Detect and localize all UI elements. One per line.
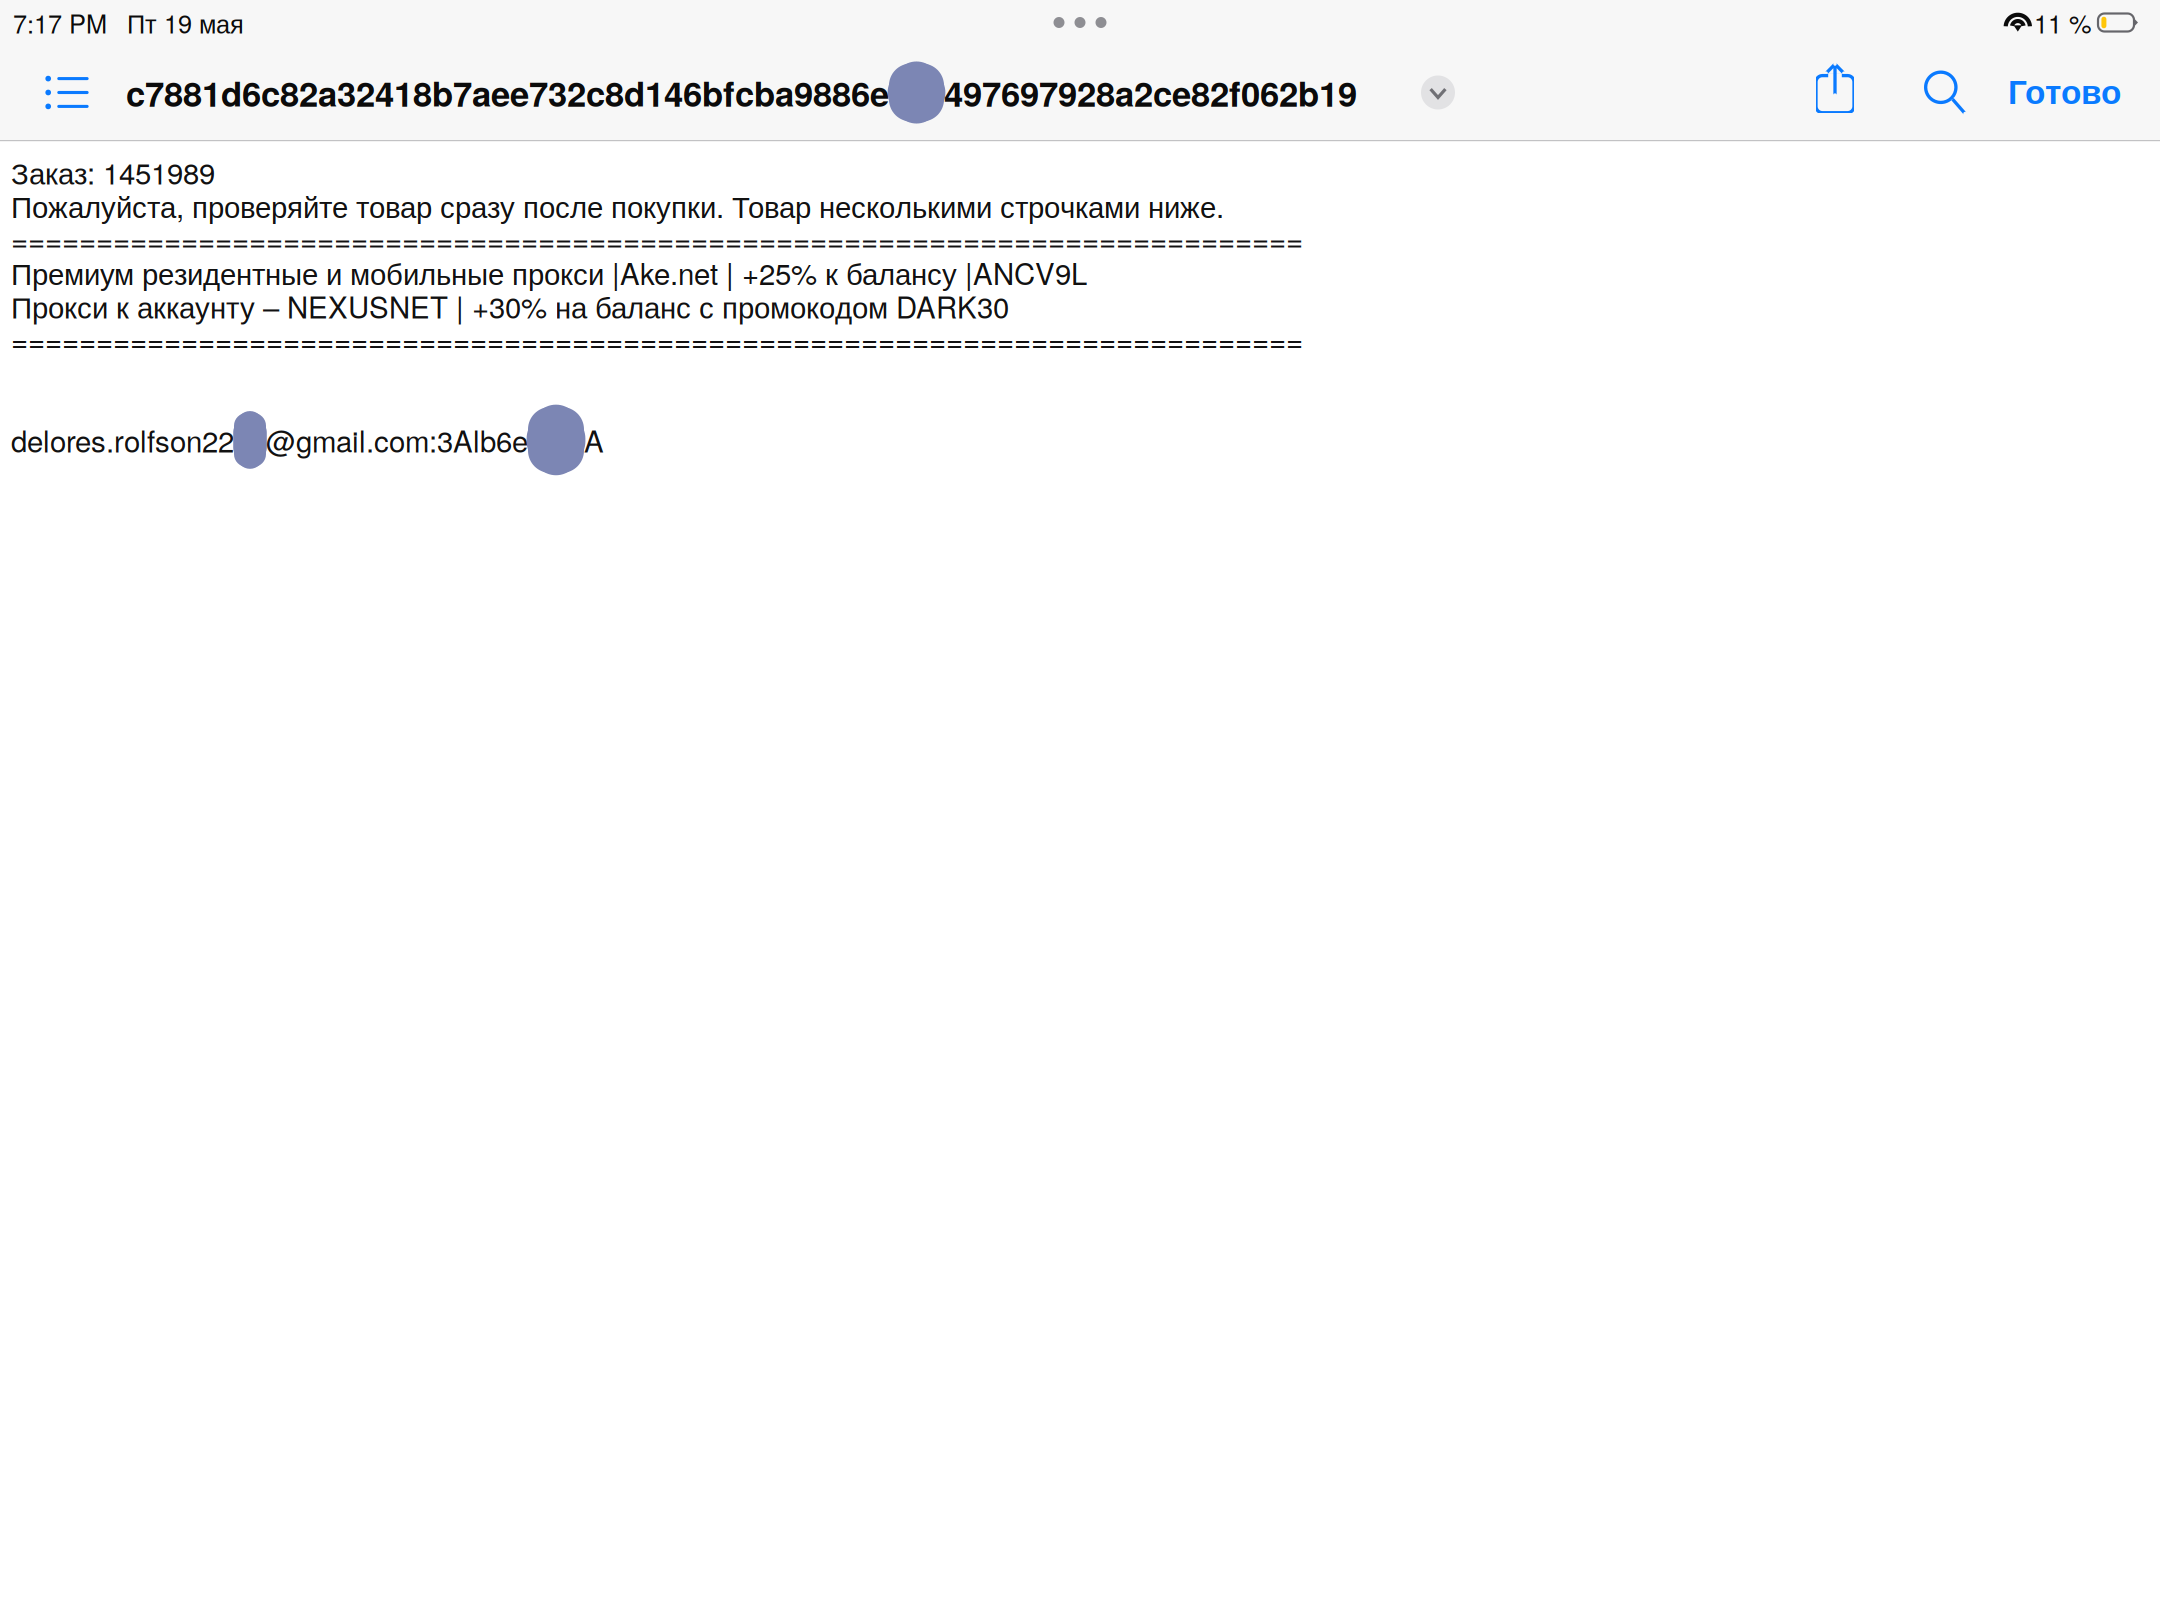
staticText: Пт 19 мая	[127, 4, 244, 41]
staticText: A	[584, 419, 604, 461]
staticText: delores.rolfson22	[11, 419, 234, 461]
staticText: ========================================…	[11, 218, 1303, 260]
button[interactable]: Готово	[2000, 60, 2129, 125]
staticText: 11 %	[2034, 4, 2092, 41]
staticText: Заказ: 1451989	[11, 151, 215, 193]
staticText: ========================================…	[11, 318, 1303, 360]
staticText: Пожалуйста, проверяйте товар сразу после…	[11, 184, 1224, 226]
button[interactable]: Share	[1802, 58, 1878, 126]
button[interactable]: Search	[1909, 58, 1981, 126]
staticText: 497697928a2ce82f062b19	[944, 68, 1357, 117]
staticText: Готово	[2008, 74, 2121, 111]
button[interactable]: Mailbox list	[33, 61, 101, 123]
staticText: 7:17 PM	[13, 4, 107, 41]
staticText: @gmail.com:3Alb6e	[266, 419, 528, 461]
staticText: Прокси к аккаунту – NEXUSNET | +30% на б…	[11, 285, 1009, 327]
staticText: Премиум резидентные и мобильные прокси |…	[11, 251, 1087, 293]
staticText: c7881d6c82a32418b7aee732c8d146bfcba9886e	[126, 68, 889, 117]
button[interactable]: Message details	[1407, 63, 1469, 121]
